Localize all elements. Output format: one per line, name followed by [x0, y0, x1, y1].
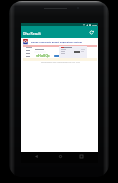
staticText: 4:05 — [92, 23, 97, 26]
staticText: Developed and Maintained by ICT Cell — [41, 61, 80, 64]
staticText: Dhu Result — [23, 31, 41, 36]
button[interactable] — [34, 48, 51, 51]
button[interactable]: Refresh — [86, 27, 96, 37]
button[interactable]: Recent apps — [74, 152, 88, 161]
button[interactable]: Home — [53, 152, 67, 161]
button[interactable] — [54, 55, 60, 57]
staticText: Dhaka University Result Publication Syst… — [31, 40, 82, 43]
button[interactable]: Back — [29, 152, 43, 161]
staticText: vHx0Qc — [36, 53, 50, 58]
